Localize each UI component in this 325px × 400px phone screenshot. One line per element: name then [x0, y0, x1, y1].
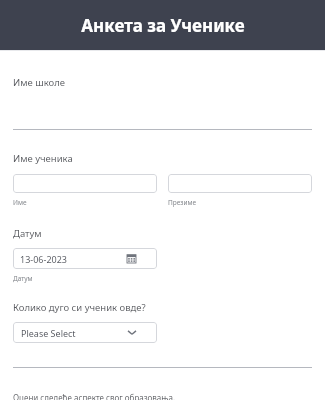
button[interactable] — [13, 112, 312, 130]
staticText: Датум — [13, 227, 42, 240]
staticText: Датум — [13, 274, 33, 283]
staticText: Име ученика — [13, 152, 73, 165]
staticText: Анкета за Ученике — [81, 14, 245, 37]
button[interactable]: 13-06-2023 — [13, 248, 157, 269]
button[interactable] — [168, 174, 312, 193]
staticText: Име школе — [13, 76, 65, 89]
staticText: Презиме — [168, 198, 197, 207]
other: Expand dropdown — [128, 330, 136, 335]
staticText: Please Select — [21, 327, 76, 339]
staticText: 13-06-2023 — [20, 253, 67, 265]
staticText: Име — [13, 198, 27, 207]
button[interactable] — [13, 174, 157, 193]
staticText: Оцени следеће аспекте свог образовања. — [13, 392, 176, 400]
staticText: Колико дуго си ученик овде? — [13, 301, 146, 314]
button[interactable]: Please Select — [13, 322, 157, 343]
other: Open calendar — [127, 254, 136, 263]
